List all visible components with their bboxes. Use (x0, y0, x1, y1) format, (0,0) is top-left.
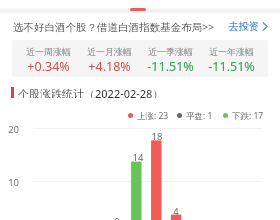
button[interactable]: 选不好白酒个股？借道白酒指数基金布局>> (0, 16, 280, 37)
staticText: +0.34% (27, 58, 70, 75)
button[interactable]: 上涨: 23 (128, 110, 169, 120)
staticText: 0 (102, 215, 132, 220)
button[interactable]: 下跌: 17 (223, 110, 264, 120)
button[interactable]: 近一周涨幅 (12, 40, 268, 77)
staticText: 近一年涨幅 (209, 46, 254, 57)
staticText: 近一周涨幅 (26, 46, 71, 57)
staticText: 14 (123, 151, 153, 164)
staticText: -11.51% (147, 58, 194, 75)
staticText: 近一季涨幅 (148, 46, 193, 57)
button[interactable]: 平盘: 1 (177, 110, 213, 120)
staticText: 个股涨跌统计（2022-02-28） (18, 86, 164, 98)
staticText: 去投资 (228, 20, 260, 33)
other: Selected tab (130, 8, 146, 11)
staticText: 下跌: 17 (232, 110, 264, 120)
staticText: 4 (161, 205, 191, 218)
staticText: 选不好白酒个股？借道白酒指数基金布局>> (13, 20, 215, 34)
staticText: 18 (142, 130, 172, 143)
staticText: 上涨: 23 (137, 110, 169, 120)
staticText: 20 (0, 123, 19, 136)
staticText: +4.18% (88, 58, 131, 75)
staticText: 10 (0, 176, 19, 189)
staticText: -11.51% (208, 58, 255, 75)
staticText: 平盘: 1 (186, 110, 213, 120)
staticText: 近一月涨幅 (87, 46, 132, 57)
